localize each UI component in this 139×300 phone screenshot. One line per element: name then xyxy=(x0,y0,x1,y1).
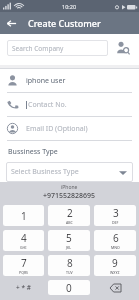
staticText: iPhone xyxy=(61,184,78,191)
staticText: GHI xyxy=(20,245,27,250)
staticText: Search Company xyxy=(12,44,64,53)
staticText: iphone user xyxy=(26,76,66,86)
staticText: 5 xyxy=(66,231,72,245)
staticText: Bussiness Type xyxy=(8,147,58,157)
button[interactable]: 1 xyxy=(3,205,44,226)
staticText: 8 xyxy=(67,256,73,270)
staticText: 4 xyxy=(21,231,27,245)
staticText: 7 xyxy=(21,256,27,270)
staticText: PQRS xyxy=(19,270,29,275)
staticText: Contact No. xyxy=(28,100,67,110)
button[interactable]: 7 xyxy=(3,255,44,276)
staticText: 3 xyxy=(113,206,119,220)
staticText: Email ID (Optional) xyxy=(26,124,88,134)
button[interactable]: Backspace xyxy=(94,280,136,295)
staticText: 10:20 xyxy=(62,3,77,10)
button[interactable]: 5 xyxy=(48,230,90,251)
button[interactable]: Search customer xyxy=(114,39,132,57)
staticText: 6 xyxy=(113,231,119,245)
button[interactable]: 6 xyxy=(94,230,136,251)
staticText: Select Business Type xyxy=(11,167,79,177)
staticText: 1 xyxy=(21,209,27,223)
button[interactable]: 4 xyxy=(3,230,44,251)
staticText: Create Customer xyxy=(28,17,101,29)
staticText: WXYZ xyxy=(110,270,120,275)
button[interactable]: 2 xyxy=(48,205,90,226)
staticText: ABC xyxy=(66,220,73,225)
staticText: TUV xyxy=(66,270,73,275)
staticText: DEF xyxy=(112,220,119,225)
button[interactable]: Select Business Type xyxy=(6,162,133,182)
button[interactable]: 0 xyxy=(48,280,90,295)
staticText: 9 xyxy=(112,256,118,270)
button[interactable]: 3 xyxy=(94,205,136,226)
staticText: JKL xyxy=(66,245,72,250)
staticText: + * # xyxy=(16,283,31,292)
button[interactable]: Contact No. xyxy=(0,93,139,116)
staticText: 0 xyxy=(66,281,72,295)
staticText: +971552828695 xyxy=(43,191,96,201)
button[interactable]: 8 xyxy=(48,255,90,276)
button[interactable]: 9 xyxy=(94,255,136,276)
button[interactable]: Search Company xyxy=(7,40,108,56)
staticText: MNO xyxy=(111,245,120,250)
button[interactable]: Email ID (Optional) xyxy=(0,117,139,140)
button[interactable]: iphone user xyxy=(0,69,139,92)
staticText: 2 xyxy=(67,206,73,220)
button[interactable]: Back xyxy=(0,12,22,34)
button[interactable]: Symbols xyxy=(3,280,44,295)
